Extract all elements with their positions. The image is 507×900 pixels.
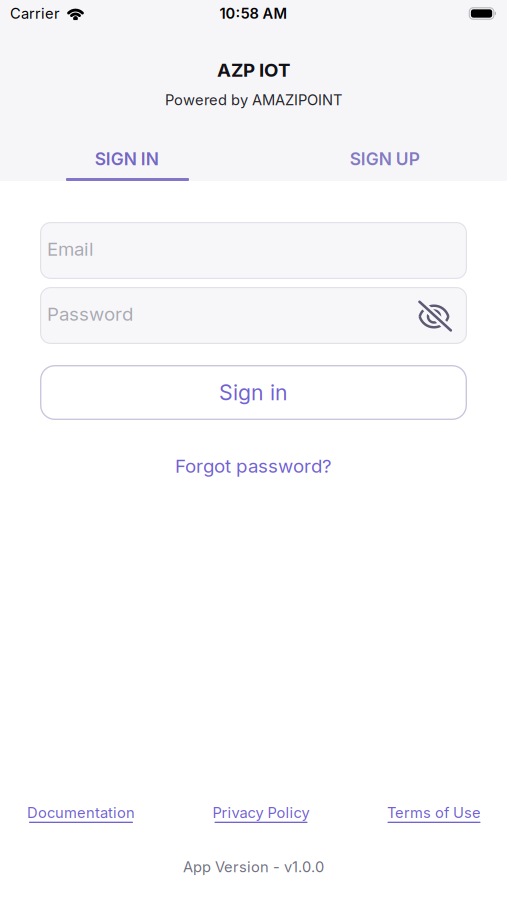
- button[interactable]: Documentation: [27, 804, 135, 823]
- staticText: Carrier: [10, 5, 60, 22]
- button[interactable]: Sign in: [40, 365, 467, 420]
- button[interactable]: SIGN UP: [253, 149, 507, 169]
- staticText: SIGN IN: [95, 149, 159, 169]
- staticText: Forgot password?: [175, 455, 332, 477]
- staticText: Documentation: [27, 804, 135, 821]
- staticText: SIGN UP: [350, 149, 420, 169]
- button[interactable]: SIGN IN: [0, 149, 253, 169]
- staticText: 10:58 AM: [219, 5, 287, 22]
- button[interactable]: Terms of Use: [387, 804, 481, 823]
- staticText: Powered by AMAZIPOINT: [165, 91, 342, 109]
- staticText: Sign in: [219, 380, 288, 405]
- staticText: Privacy Policy: [212, 804, 309, 821]
- staticText: Password: [47, 303, 133, 325]
- button[interactable]: Show password: [415, 297, 451, 333]
- button[interactable]: Forgot password?: [175, 454, 332, 478]
- staticText: App Version - v1.0.0: [183, 858, 324, 876]
- button[interactable]: Privacy Policy: [212, 804, 309, 823]
- staticText: AZP IOT: [217, 59, 290, 81]
- staticText: Email: [47, 238, 94, 260]
- staticText: Terms of Use: [387, 804, 481, 821]
